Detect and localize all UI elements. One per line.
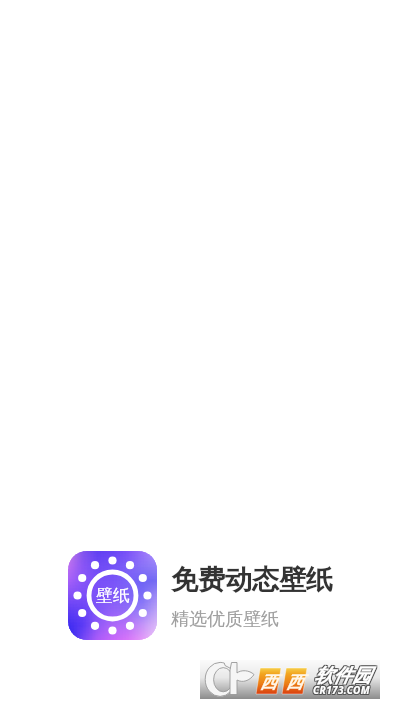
staticText: CR173.COM	[313, 684, 370, 698]
staticText: 软件园	[314, 663, 371, 687]
staticText: 免费动态壁纸	[171, 563, 333, 597]
staticText: 软件园	[315, 663, 372, 687]
button[interactable]: 壁纸	[68, 551, 333, 640]
staticText: CR173.COM	[312, 684, 369, 698]
staticText: 精选优质壁纸	[171, 608, 279, 631]
staticText: CR173.COM	[312, 683, 369, 697]
staticText: 西	[286, 672, 303, 693]
staticText: 软件园	[313, 663, 370, 687]
staticText: 软件园	[315, 664, 372, 688]
staticText: 软件园	[313, 665, 370, 689]
staticText: 软件园	[313, 664, 370, 688]
staticText: 西	[260, 672, 277, 693]
staticText: 软件园	[314, 665, 371, 689]
staticText: CR173.COM	[313, 682, 370, 696]
staticText: CR173.COM	[314, 683, 371, 697]
staticText: CR173.COM	[314, 684, 371, 698]
staticText: CR173.COM	[312, 682, 369, 696]
staticText: CR173.COM	[314, 682, 371, 696]
staticText: 软件园	[315, 665, 372, 689]
staticText: 软件园	[314, 664, 371, 688]
staticText: CR173.COM	[313, 683, 370, 697]
staticText: 壁纸	[96, 585, 130, 606]
